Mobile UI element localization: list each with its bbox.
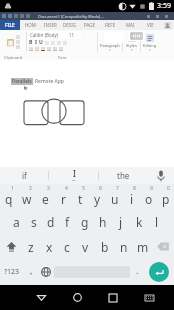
button[interactable]: k bbox=[130, 209, 148, 234]
staticText: , bbox=[30, 264, 33, 276]
staticText: q bbox=[5, 191, 13, 207]
staticText: REFE bbox=[105, 22, 116, 28]
button[interactable]: FILE bbox=[0, 20, 20, 30]
button[interactable]: b bbox=[95, 234, 114, 259]
button[interactable]: REFE bbox=[100, 20, 120, 30]
button[interactable]: l bbox=[148, 209, 166, 234]
staticText: p bbox=[162, 191, 170, 207]
staticText: if bbox=[22, 170, 27, 181]
staticText: ?123 bbox=[4, 267, 20, 277]
button[interactable]: Home bbox=[59, 285, 95, 310]
button[interactable]: f bbox=[59, 209, 76, 234]
button[interactable]: Editing bbox=[141, 30, 158, 54]
button[interactable]: 7 bbox=[106, 184, 123, 209]
staticText: m bbox=[137, 239, 149, 255]
button[interactable]: x bbox=[40, 234, 58, 259]
staticText: y bbox=[94, 191, 101, 207]
button[interactable]: Back bbox=[23, 285, 59, 310]
staticText: s bbox=[31, 214, 37, 230]
button[interactable]: Account bbox=[160, 20, 174, 30]
staticText: a bbox=[13, 214, 20, 230]
staticText: j bbox=[119, 214, 123, 230]
staticText: Font bbox=[58, 55, 67, 60]
staticText: l bbox=[155, 214, 159, 230]
staticText: I bbox=[73, 168, 76, 179]
button[interactable]: g bbox=[76, 209, 94, 234]
staticText: v bbox=[82, 239, 89, 255]
button[interactable]: MAI bbox=[120, 20, 140, 30]
button[interactable]: . bbox=[130, 259, 144, 285]
staticText: c bbox=[64, 239, 70, 255]
staticText: u bbox=[111, 191, 119, 207]
staticText: PAGE bbox=[84, 22, 96, 28]
staticText: ▾ bbox=[131, 48, 133, 51]
staticText: i bbox=[130, 191, 134, 207]
button[interactable]: h bbox=[94, 209, 112, 234]
button[interactable]: Shift bbox=[0, 234, 22, 259]
staticText: ▾ bbox=[149, 48, 151, 51]
button[interactable]: INSER bbox=[40, 20, 60, 30]
staticText: Editing bbox=[143, 43, 157, 48]
button[interactable]: I bbox=[49, 167, 98, 184]
staticText: x bbox=[46, 239, 53, 255]
button[interactable]: 4 bbox=[54, 184, 72, 209]
staticText: 7 bbox=[116, 185, 119, 192]
button[interactable]: a bbox=[8, 209, 25, 234]
staticText: Clipboard bbox=[4, 55, 23, 60]
staticText: 8 bbox=[133, 185, 136, 192]
button[interactable]: Change language bbox=[38, 259, 54, 285]
staticText: Document1 [Compatibility Mode]... bbox=[38, 14, 104, 19]
button[interactable]: 9 bbox=[140, 184, 157, 209]
button[interactable]: j bbox=[112, 209, 130, 234]
button[interactable]: n bbox=[114, 234, 133, 259]
staticText: FILE bbox=[5, 22, 15, 29]
staticText: w bbox=[22, 191, 32, 207]
button[interactable]: Recent apps bbox=[95, 285, 131, 310]
staticText: h bbox=[99, 214, 107, 230]
button[interactable]: if bbox=[0, 167, 48, 184]
button[interactable]: 0 bbox=[157, 184, 174, 209]
button[interactable]: DESIG bbox=[60, 20, 80, 30]
staticText: o bbox=[145, 191, 153, 207]
staticText: B bbox=[29, 39, 33, 46]
button[interactable]: HOM bbox=[20, 20, 40, 30]
button[interactable]: d bbox=[42, 209, 59, 234]
button[interactable]: v bbox=[76, 234, 95, 259]
staticText: Remote App bbox=[35, 78, 64, 85]
button[interactable]: 8 bbox=[123, 184, 140, 209]
button[interactable]: PAGE bbox=[80, 20, 100, 30]
button[interactable]: 5 bbox=[72, 184, 89, 209]
button[interactable]: 6 bbox=[89, 184, 106, 209]
button[interactable]: Enter bbox=[149, 262, 169, 282]
staticText: HOM bbox=[25, 22, 36, 28]
button[interactable]: 1 bbox=[0, 184, 18, 209]
staticText: the bbox=[117, 170, 130, 181]
button[interactable]: VIE bbox=[140, 20, 160, 30]
button[interactable]: Calibri (Body) bbox=[29, 31, 67, 38]
staticText: g bbox=[81, 214, 89, 230]
button[interactable]: Switch keyboard bbox=[131, 285, 167, 310]
button[interactable]: Voice input bbox=[148, 167, 174, 184]
button[interactable]: 11 bbox=[68, 31, 81, 38]
button[interactable]: Backspace bbox=[152, 234, 174, 259]
button[interactable]: , bbox=[24, 259, 38, 285]
button[interactable]: m bbox=[133, 234, 152, 259]
button[interactable]: ?123 bbox=[0, 259, 24, 285]
button[interactable]: z bbox=[22, 234, 40, 259]
button[interactable]: c bbox=[58, 234, 76, 259]
staticText: DESIG bbox=[63, 22, 77, 28]
staticText: I bbox=[35, 39, 37, 46]
staticText: 9 bbox=[150, 185, 153, 192]
staticText: . bbox=[136, 264, 139, 276]
button[interactable]: Styles bbox=[123, 30, 140, 54]
staticText: d bbox=[47, 214, 55, 230]
button[interactable]: Paragraph bbox=[98, 30, 122, 54]
button[interactable]: s bbox=[25, 209, 42, 234]
button[interactable]: the bbox=[99, 167, 148, 184]
button[interactable]: 3 bbox=[36, 184, 54, 209]
staticText: f bbox=[65, 214, 70, 230]
button[interactable]: 2 bbox=[18, 184, 36, 209]
button[interactable] bbox=[0, 30, 26, 54]
staticText: 4 bbox=[65, 185, 68, 192]
